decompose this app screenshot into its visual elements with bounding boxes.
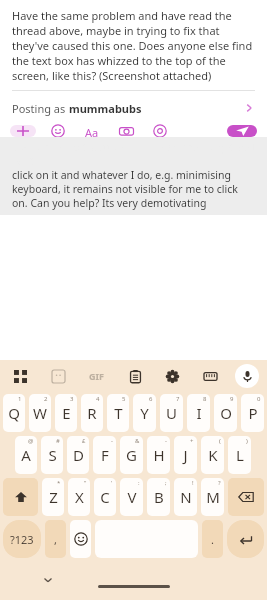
button[interactable]: Mention bbox=[148, 125, 172, 137]
button[interactable]: F bbox=[93, 436, 116, 474]
button[interactable]: Y bbox=[133, 394, 156, 432]
button[interactable]: Add bbox=[10, 125, 36, 137]
staticText: 1 bbox=[18, 395, 22, 403]
button[interactable]: Camera bbox=[114, 125, 138, 137]
staticText: + bbox=[190, 437, 194, 445]
button[interactable]: Shift bbox=[3, 478, 38, 516]
staticText: 5 bbox=[122, 395, 126, 403]
button[interactable]: L bbox=[228, 436, 251, 474]
staticText: ( bbox=[219, 437, 221, 445]
staticText: I bbox=[196, 403, 202, 423]
staticText: # bbox=[56, 437, 60, 445]
staticText: Posting as bbox=[12, 101, 69, 116]
button[interactable]: G bbox=[120, 436, 143, 474]
staticText: H bbox=[153, 445, 165, 465]
other: Shift bbox=[3, 478, 38, 516]
staticText: E bbox=[62, 403, 71, 423]
button[interactable]: Aa bbox=[80, 125, 104, 137]
button[interactable]: M bbox=[201, 478, 224, 516]
other: Backspace bbox=[228, 478, 264, 516]
button[interactable]: J bbox=[174, 436, 197, 474]
staticText: Y bbox=[140, 403, 149, 423]
button[interactable]: A bbox=[15, 436, 37, 474]
button[interactable]: U bbox=[160, 394, 183, 432]
button[interactable]: D bbox=[67, 436, 89, 474]
staticText: ' bbox=[111, 479, 113, 487]
staticText: * bbox=[57, 479, 61, 487]
button[interactable]: C bbox=[94, 478, 116, 516]
staticText: - bbox=[111, 437, 113, 445]
button[interactable]: K bbox=[201, 436, 224, 474]
button[interactable]: O bbox=[214, 394, 237, 432]
button[interactable]: Clipboard bbox=[123, 364, 147, 388]
button[interactable]: B bbox=[147, 478, 170, 516]
staticText: D bbox=[73, 445, 84, 465]
staticText: S bbox=[48, 445, 57, 465]
staticText: P bbox=[248, 403, 258, 423]
button[interactable]: Emoji bbox=[70, 520, 91, 558]
button[interactable]: Q bbox=[3, 394, 25, 432]
button[interactable]: ?123 bbox=[3, 520, 41, 558]
staticText: V bbox=[127, 487, 137, 507]
staticText: . bbox=[211, 532, 214, 547]
staticText: @ bbox=[28, 437, 34, 445]
button[interactable]: N bbox=[174, 478, 197, 516]
button[interactable]: GIF bbox=[83, 363, 109, 389]
button[interactable]: Send bbox=[227, 125, 257, 137]
staticText: ! bbox=[192, 479, 194, 487]
staticText: G bbox=[126, 445, 137, 465]
staticText: R bbox=[87, 403, 97, 423]
staticText: C bbox=[100, 487, 110, 507]
staticText: click on it and whatever I do, e.g. mini… bbox=[12, 168, 255, 210]
staticText: - bbox=[165, 437, 167, 445]
staticText: K bbox=[208, 445, 218, 465]
button[interactable]: V bbox=[120, 478, 143, 516]
button[interactable]: W bbox=[29, 394, 51, 432]
staticText: Have the same problem and have read the … bbox=[12, 8, 255, 83]
button[interactable]: Keyboard layout bbox=[198, 364, 222, 388]
button[interactable]: E bbox=[55, 394, 77, 432]
staticText: 8 bbox=[203, 395, 207, 403]
staticText: ? bbox=[218, 479, 221, 487]
button[interactable]: Enter bbox=[227, 520, 264, 558]
staticText: 2 bbox=[44, 395, 48, 403]
button[interactable]: Apps bbox=[8, 364, 32, 388]
button[interactable]: H bbox=[147, 436, 170, 474]
staticText: mummabubs bbox=[69, 101, 142, 116]
staticText: 0 bbox=[257, 395, 261, 403]
button[interactable]: I bbox=[187, 394, 210, 432]
staticText: 6 bbox=[149, 395, 153, 403]
button[interactable]: P bbox=[241, 394, 264, 432]
staticText: GIF bbox=[89, 370, 104, 382]
staticText: U bbox=[166, 403, 177, 423]
staticText: Aa bbox=[85, 125, 99, 137]
staticText: " bbox=[84, 479, 87, 487]
button[interactable]: R bbox=[81, 394, 103, 432]
staticText: ) bbox=[246, 437, 248, 445]
staticText: 7 bbox=[176, 395, 180, 403]
button[interactable]: Posting as bbox=[0, 91, 267, 125]
button[interactable]: . bbox=[202, 520, 223, 558]
button[interactable]: T bbox=[107, 394, 129, 432]
button[interactable]: Space bbox=[95, 520, 198, 558]
button[interactable]: Settings bbox=[160, 364, 184, 388]
staticText: 9 bbox=[230, 395, 234, 403]
button[interactable]: Backspace bbox=[228, 478, 264, 516]
staticText: & bbox=[135, 437, 140, 445]
button[interactable]: , bbox=[45, 520, 66, 558]
button[interactable]: Hide keyboard bbox=[38, 570, 58, 590]
staticText: , bbox=[54, 532, 57, 547]
button[interactable]: Z bbox=[42, 478, 64, 516]
button[interactable]: Emoji bbox=[46, 125, 70, 137]
staticText: O bbox=[220, 403, 232, 423]
other: Emoji bbox=[70, 520, 91, 558]
button[interactable]: X bbox=[68, 478, 90, 516]
staticText: X bbox=[75, 487, 84, 507]
button[interactable]: S bbox=[41, 436, 63, 474]
button[interactable]: Stickers bbox=[46, 364, 70, 388]
button[interactable]: Voice input bbox=[235, 364, 259, 388]
staticText: 3 bbox=[70, 395, 74, 403]
staticText: Q bbox=[8, 403, 20, 423]
staticText: J bbox=[183, 445, 188, 465]
staticText: M bbox=[206, 487, 220, 507]
